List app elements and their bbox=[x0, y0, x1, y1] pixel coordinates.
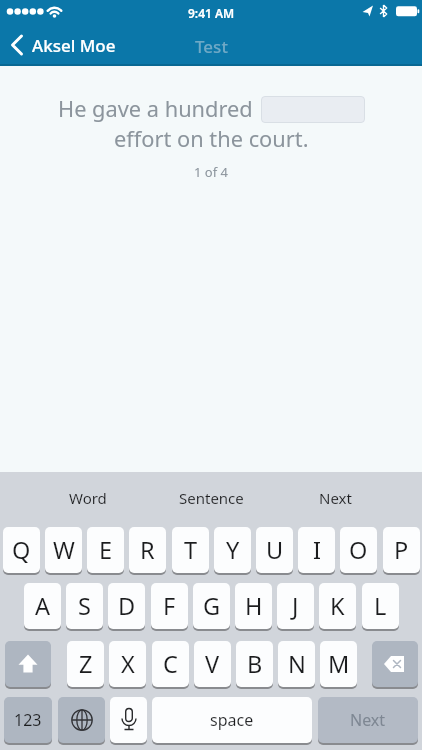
staticText: Aksel Moe bbox=[32, 34, 116, 57]
button[interactable]: Next bbox=[312, 472, 358, 524]
staticText: H bbox=[245, 590, 263, 622]
button[interactable]: L bbox=[362, 583, 399, 629]
button[interactable]: F bbox=[151, 583, 188, 629]
button[interactable]: A bbox=[24, 583, 61, 629]
staticText: V bbox=[205, 648, 220, 680]
staticText: space bbox=[210, 709, 254, 731]
button[interactable]: Next bbox=[318, 697, 418, 743]
staticText: E bbox=[99, 534, 113, 566]
button[interactable]: K bbox=[319, 583, 356, 629]
staticText: 9:41 AM bbox=[188, 5, 235, 21]
staticText: S bbox=[78, 590, 91, 622]
staticText: Y bbox=[226, 534, 240, 566]
button[interactable]: J bbox=[277, 583, 314, 629]
button[interactable]: Y bbox=[214, 527, 251, 573]
button[interactable] bbox=[5, 641, 51, 687]
button[interactable]: D bbox=[108, 583, 145, 629]
button[interactable] bbox=[372, 641, 418, 687]
staticText: N bbox=[288, 648, 306, 680]
staticText: J bbox=[292, 590, 299, 622]
staticText: K bbox=[330, 590, 345, 622]
staticText: G bbox=[203, 590, 221, 622]
button[interactable]: N bbox=[278, 641, 315, 687]
button[interactable]: G bbox=[193, 583, 230, 629]
button[interactable]: Z bbox=[67, 641, 104, 687]
staticText: W bbox=[53, 534, 75, 566]
staticText: A bbox=[35, 590, 51, 622]
staticText: L bbox=[374, 590, 387, 622]
staticText: F bbox=[163, 590, 176, 622]
staticText: Sentence bbox=[179, 488, 244, 508]
button[interactable]: M bbox=[320, 641, 357, 687]
button[interactable]: Test bbox=[195, 35, 228, 58]
staticText: T bbox=[184, 534, 198, 566]
staticText: Q bbox=[12, 534, 31, 566]
staticText: X bbox=[121, 648, 135, 680]
staticText: C bbox=[163, 648, 178, 680]
button[interactable]: U bbox=[256, 527, 293, 573]
staticText: He gave a hundred bbox=[58, 94, 253, 124]
button[interactable]: X bbox=[109, 641, 146, 687]
button[interactable]: T bbox=[172, 527, 209, 573]
button[interactable]: I bbox=[298, 527, 335, 573]
button[interactable] bbox=[110, 697, 147, 743]
button[interactable]: 123 bbox=[4, 697, 52, 743]
button[interactable]: H bbox=[235, 583, 272, 629]
staticText: Next bbox=[350, 709, 386, 731]
staticText: M bbox=[328, 648, 350, 680]
button[interactable] bbox=[261, 96, 365, 123]
button[interactable]: C bbox=[152, 641, 189, 687]
button[interactable]: Q bbox=[3, 527, 40, 573]
staticText: Next bbox=[319, 488, 352, 508]
button[interactable]: R bbox=[129, 527, 166, 573]
staticText: effort on the court. bbox=[114, 124, 309, 154]
staticText: I bbox=[313, 534, 321, 566]
staticText: U bbox=[266, 534, 284, 566]
staticText: B bbox=[247, 648, 263, 680]
staticText: 123 bbox=[14, 709, 42, 731]
button[interactable]: Aksel Moe bbox=[8, 27, 116, 63]
staticText: R bbox=[140, 534, 155, 566]
button[interactable]: S bbox=[66, 583, 103, 629]
button[interactable]: O bbox=[340, 527, 377, 573]
button[interactable]: Sentence bbox=[178, 472, 244, 524]
staticText: 1 of 4 bbox=[194, 163, 228, 181]
button[interactable]: space bbox=[152, 697, 312, 743]
button[interactable]: E bbox=[87, 527, 124, 573]
staticText: D bbox=[118, 590, 136, 622]
staticText: P bbox=[394, 534, 409, 566]
button[interactable]: B bbox=[236, 641, 273, 687]
button[interactable]: V bbox=[194, 641, 231, 687]
button[interactable]: P bbox=[383, 527, 420, 573]
staticText: Word bbox=[69, 488, 107, 508]
button[interactable]: W bbox=[45, 527, 82, 573]
button[interactable]: Word bbox=[60, 472, 116, 524]
staticText: O bbox=[349, 534, 368, 566]
staticText: Z bbox=[79, 648, 93, 680]
button[interactable] bbox=[58, 697, 105, 743]
